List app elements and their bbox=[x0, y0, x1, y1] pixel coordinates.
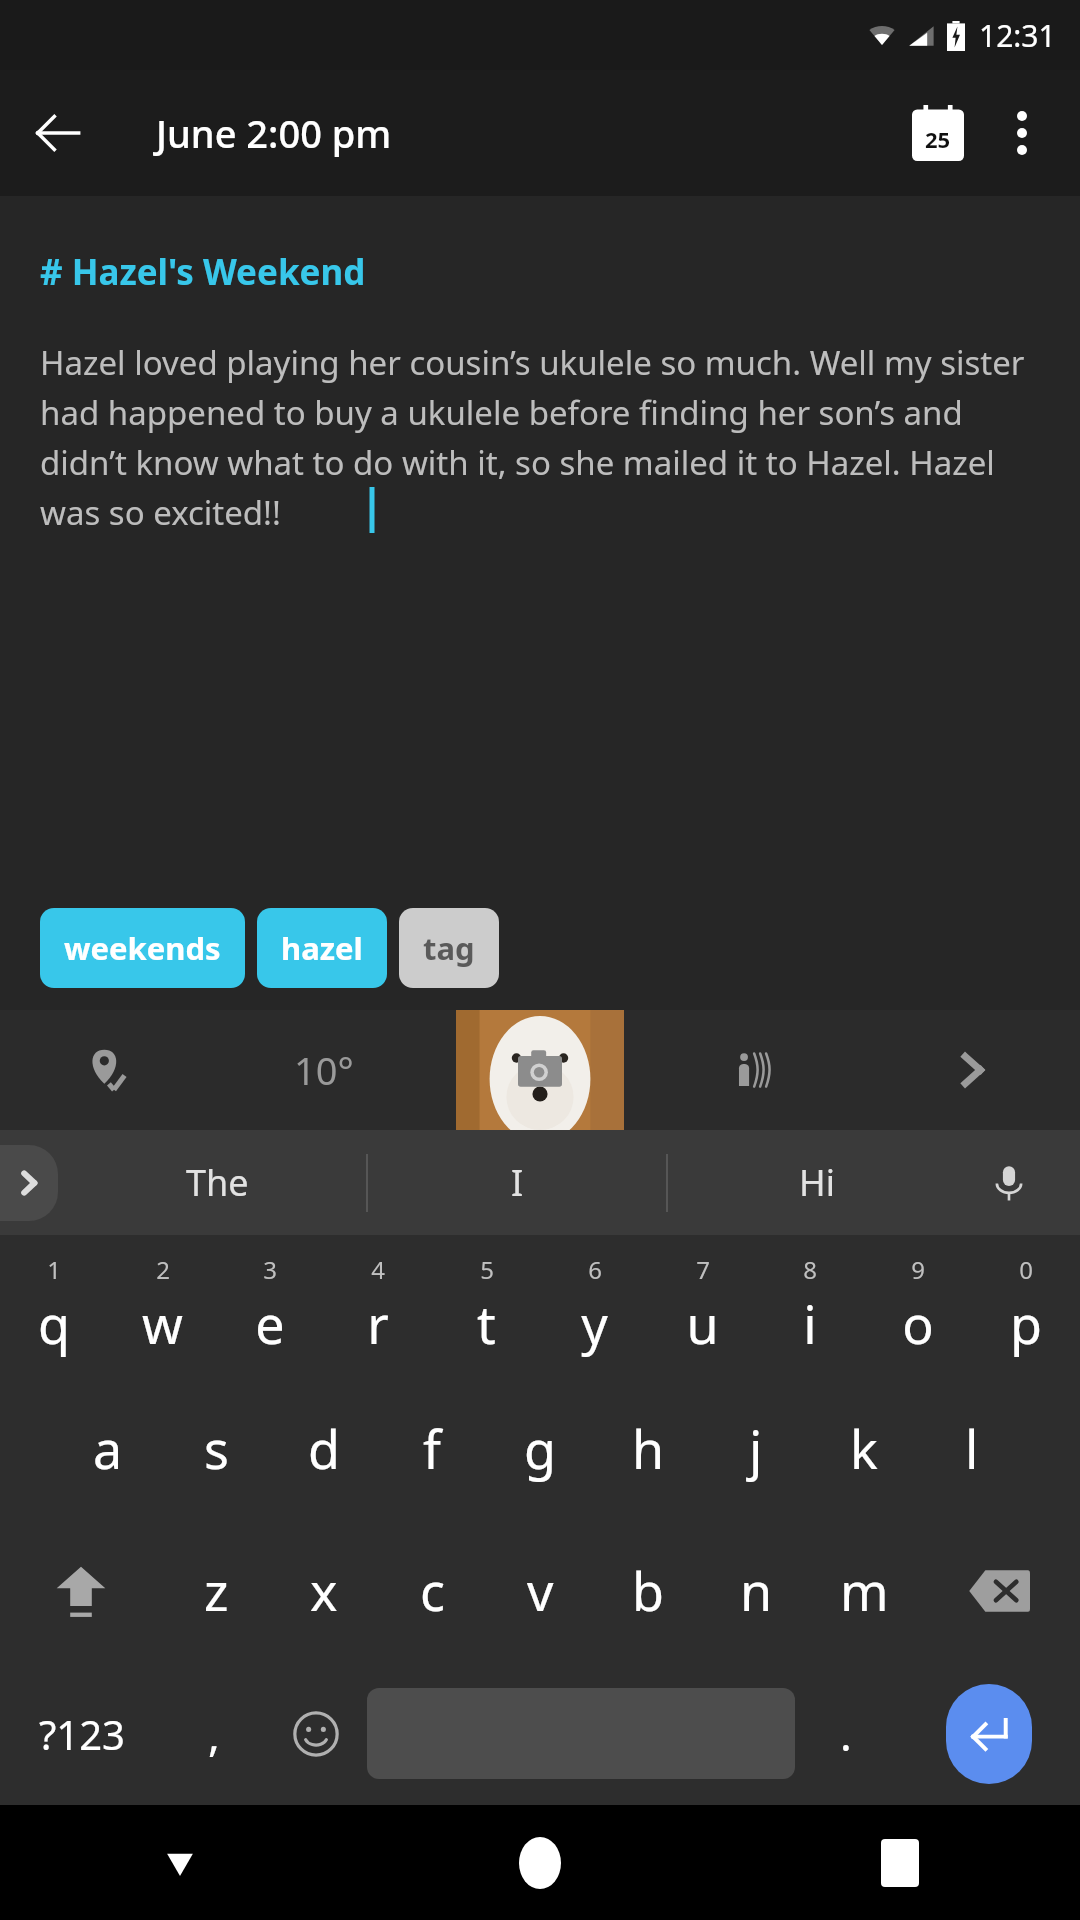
button[interactable]: b bbox=[594, 1519, 702, 1662]
button[interactable]: More bbox=[864, 1010, 1080, 1130]
button[interactable]: hazel bbox=[257, 908, 387, 988]
staticText: hazel bbox=[281, 927, 363, 969]
button[interactable]: Back bbox=[20, 95, 96, 171]
staticText: j bbox=[749, 1413, 763, 1484]
button[interactable]: Home bbox=[360, 1805, 720, 1920]
button[interactable]: Enter bbox=[897, 1662, 1080, 1805]
staticText: weekends bbox=[64, 927, 221, 969]
staticText: y bbox=[581, 1288, 608, 1359]
button[interactable]: Voice input bbox=[966, 1130, 1052, 1235]
staticText: a bbox=[93, 1413, 123, 1484]
button[interactable]: 4 bbox=[324, 1235, 432, 1377]
button[interactable]: . bbox=[795, 1662, 897, 1805]
staticText: Hi bbox=[799, 1158, 835, 1207]
button[interactable]: I bbox=[368, 1130, 666, 1235]
button[interactable]: m bbox=[810, 1519, 918, 1662]
staticText: 6 bbox=[588, 1253, 602, 1286]
button[interactable]: Backspace bbox=[918, 1519, 1080, 1662]
staticText: 5 bbox=[480, 1253, 494, 1286]
button[interactable]: s bbox=[162, 1377, 270, 1519]
staticText: h bbox=[632, 1413, 665, 1484]
staticText: 10° bbox=[294, 1044, 354, 1096]
staticText: z bbox=[204, 1555, 229, 1626]
button[interactable]: 0 bbox=[972, 1235, 1080, 1377]
button[interactable]: x bbox=[270, 1519, 378, 1662]
button[interactable]: Location bbox=[0, 1010, 216, 1130]
button[interactable]: 3 bbox=[216, 1235, 324, 1377]
staticText: , bbox=[208, 1704, 220, 1764]
staticText: l bbox=[965, 1413, 979, 1484]
button[interactable]: 10° bbox=[216, 1010, 432, 1130]
button[interactable]: k bbox=[810, 1377, 918, 1519]
button[interactable]: 7 bbox=[648, 1235, 756, 1377]
staticText: The bbox=[186, 1158, 249, 1207]
staticText: p bbox=[1010, 1288, 1042, 1359]
button[interactable]: 5 bbox=[432, 1235, 540, 1377]
staticText: m bbox=[840, 1555, 889, 1626]
button[interactable]: Hide keyboard bbox=[0, 1805, 360, 1920]
staticText: g bbox=[524, 1413, 556, 1484]
staticText: s bbox=[204, 1413, 229, 1484]
staticText: i bbox=[803, 1288, 817, 1359]
staticText: 2 bbox=[156, 1253, 170, 1286]
button[interactable]: Voice bbox=[648, 1010, 864, 1130]
button[interactable]: More options bbox=[980, 91, 1064, 175]
staticText: . bbox=[840, 1704, 852, 1764]
button[interactable]: g bbox=[486, 1377, 594, 1519]
staticText: 12:31 bbox=[979, 15, 1056, 56]
staticText: c bbox=[420, 1555, 445, 1626]
button[interactable]: d bbox=[270, 1377, 378, 1519]
button[interactable]: v bbox=[486, 1519, 594, 1662]
button[interactable]: Calendar bbox=[896, 91, 980, 175]
button[interactable]: Expand toolbar bbox=[0, 1145, 58, 1221]
staticText: June 2:00 pm bbox=[156, 107, 392, 159]
staticText: I bbox=[511, 1158, 524, 1207]
staticText: e bbox=[255, 1288, 285, 1359]
button[interactable]: Photo bbox=[432, 1010, 648, 1130]
staticText: 7 bbox=[696, 1253, 710, 1286]
button[interactable]: Emoji bbox=[265, 1662, 367, 1805]
staticText: 9 bbox=[911, 1253, 925, 1286]
button[interactable]: weekends bbox=[40, 908, 245, 988]
button[interactable]: z bbox=[162, 1519, 270, 1662]
button[interactable]: a bbox=[54, 1377, 162, 1519]
staticText: v bbox=[527, 1555, 554, 1626]
staticText: d bbox=[308, 1413, 340, 1484]
staticText: q bbox=[38, 1288, 70, 1359]
button[interactable]: Recents bbox=[720, 1805, 1080, 1920]
staticText: u bbox=[686, 1288, 719, 1359]
button[interactable]: 2 bbox=[108, 1235, 216, 1377]
staticText: 25 bbox=[925, 124, 951, 154]
staticText: t bbox=[477, 1288, 496, 1359]
button[interactable]: tag bbox=[399, 908, 499, 988]
button[interactable]: 1 bbox=[0, 1235, 108, 1377]
button[interactable]: j bbox=[702, 1377, 810, 1519]
staticText: tag bbox=[423, 927, 475, 969]
staticText: ?123 bbox=[39, 1707, 125, 1761]
button[interactable]: l bbox=[918, 1377, 1026, 1519]
button[interactable]: Hi bbox=[668, 1130, 966, 1235]
button[interactable]: f bbox=[378, 1377, 486, 1519]
staticText: 4 bbox=[371, 1253, 385, 1286]
staticText: b bbox=[632, 1555, 664, 1626]
button[interactable]: 9 bbox=[864, 1235, 972, 1377]
button[interactable]: n bbox=[702, 1519, 810, 1662]
staticText: 0 bbox=[1019, 1253, 1033, 1286]
staticText: o bbox=[902, 1288, 934, 1359]
staticText: w bbox=[142, 1288, 183, 1359]
button[interactable]: ?123 bbox=[0, 1662, 163, 1805]
button[interactable]: 6 bbox=[540, 1235, 648, 1377]
button[interactable]: Shift bbox=[0, 1519, 162, 1662]
button[interactable]: , bbox=[163, 1662, 265, 1805]
staticText: 8 bbox=[803, 1253, 817, 1286]
staticText: # Hazel's Weekend bbox=[40, 248, 366, 296]
staticText: n bbox=[740, 1555, 773, 1626]
staticText: Hazel loved playing her cousin’s ukulele… bbox=[40, 340, 1040, 535]
staticText: r bbox=[367, 1288, 389, 1359]
button[interactable]: 8 bbox=[756, 1235, 864, 1377]
button[interactable]: The bbox=[68, 1130, 366, 1235]
button[interactable]: h bbox=[594, 1377, 702, 1519]
button[interactable]: c bbox=[378, 1519, 486, 1662]
staticText: x bbox=[310, 1555, 338, 1626]
